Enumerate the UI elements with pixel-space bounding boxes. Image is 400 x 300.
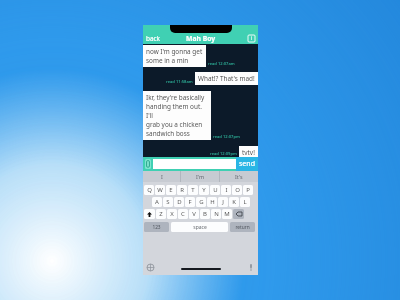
button[interactable]: H: [207, 197, 217, 207]
button[interactable]: G: [196, 197, 206, 207]
staticText: U: [213, 186, 218, 194]
button[interactable]: Y: [199, 185, 209, 195]
staticText: Ikr, they're basically handing them out.…: [146, 93, 208, 138]
staticText: i: [251, 35, 253, 42]
staticText: N: [214, 210, 219, 218]
staticText: J: [222, 198, 224, 206]
button[interactable]: Voice input: [249, 264, 253, 271]
button[interactable]: What!? That's mad!: [195, 72, 258, 85]
staticText: B: [203, 210, 207, 218]
button[interactable]: E: [166, 185, 176, 195]
button[interactable]: I: [221, 185, 231, 195]
staticText: read 11:58am: [166, 79, 193, 85]
staticText: back: [146, 34, 160, 43]
button[interactable]: Ikr, they're basically handing them out.…: [143, 91, 211, 140]
button[interactable]: J: [218, 197, 228, 207]
button[interactable]: B: [200, 209, 210, 219]
staticText: X: [170, 210, 174, 218]
button[interactable]: P: [243, 185, 253, 195]
staticText: read 12:09pm: [210, 151, 237, 157]
staticText: What!? That's mad!: [198, 74, 255, 83]
button[interactable]: Shift: [144, 209, 155, 219]
button[interactable]: X: [167, 209, 177, 219]
button[interactable]: C: [178, 209, 188, 219]
button[interactable]: O: [232, 185, 242, 195]
button[interactable]: W: [155, 185, 165, 195]
button[interactable]: R: [177, 185, 187, 195]
button[interactable]: tyty!: [239, 146, 258, 157]
staticText: Mah Boy: [186, 34, 216, 43]
staticText: L: [243, 198, 247, 206]
button[interactable]: space: [171, 222, 228, 232]
staticText: 123: [152, 224, 161, 231]
staticText: C: [181, 210, 185, 218]
staticText: H: [210, 198, 215, 206]
button[interactable]: Z: [156, 209, 166, 219]
staticText: now I'm gonna get some in a min: [146, 47, 203, 65]
button[interactable]: It's: [220, 171, 258, 182]
staticText: It's: [235, 173, 243, 180]
staticText: I: [225, 186, 228, 194]
staticText: tyty!: [242, 148, 255, 155]
button[interactable]: Q: [144, 185, 154, 195]
button[interactable]: return: [230, 222, 255, 232]
staticText: E: [169, 186, 173, 194]
staticText: return: [235, 224, 250, 231]
staticText: R: [180, 186, 184, 194]
button[interactable]: K: [229, 197, 239, 207]
staticText: Y: [202, 186, 206, 194]
button[interactable]: N: [211, 209, 221, 219]
button[interactable]: F: [185, 197, 195, 207]
staticText: G: [199, 198, 204, 206]
staticText: I: [161, 173, 163, 180]
button[interactable]: Attach: [145, 159, 151, 169]
staticText: space: [193, 224, 207, 231]
button[interactable]: Language: [147, 264, 154, 271]
staticText: I'm: [196, 173, 204, 180]
staticText: T: [191, 186, 195, 194]
button[interactable]: M: [222, 209, 232, 219]
button[interactable]: send: [236, 157, 258, 171]
staticText: D: [177, 198, 182, 206]
button[interactable]: D: [174, 197, 184, 207]
staticText: M: [224, 210, 230, 218]
staticText: send: [239, 159, 255, 169]
button[interactable]: V: [189, 209, 199, 219]
staticText: P: [246, 186, 250, 194]
button[interactable]: I'm: [181, 171, 219, 182]
staticText: W: [157, 186, 163, 194]
button[interactable]: Backspace: [233, 209, 244, 219]
staticText: read 12:07pm: [213, 134, 240, 140]
button[interactable]: S: [163, 197, 173, 207]
button[interactable]: L: [240, 197, 250, 207]
button[interactable]: I: [143, 171, 180, 182]
button[interactable]: back: [143, 34, 163, 43]
button[interactable]: 123: [144, 222, 169, 232]
staticText: read 12:07am: [208, 61, 235, 67]
button[interactable]: now I'm gonna get some in a min: [143, 45, 206, 67]
staticText: Z: [159, 210, 163, 218]
button[interactable]: U: [210, 185, 220, 195]
staticText: A: [155, 198, 159, 206]
staticText: V: [192, 210, 196, 218]
button[interactable]: Info: [248, 35, 255, 42]
staticText: F: [188, 198, 192, 206]
staticText: K: [232, 198, 236, 206]
button[interactable]: T: [188, 185, 198, 195]
staticText: Q: [147, 186, 152, 194]
staticText: O: [235, 186, 240, 194]
staticText: S: [166, 198, 170, 206]
button[interactable]: A: [152, 197, 162, 207]
